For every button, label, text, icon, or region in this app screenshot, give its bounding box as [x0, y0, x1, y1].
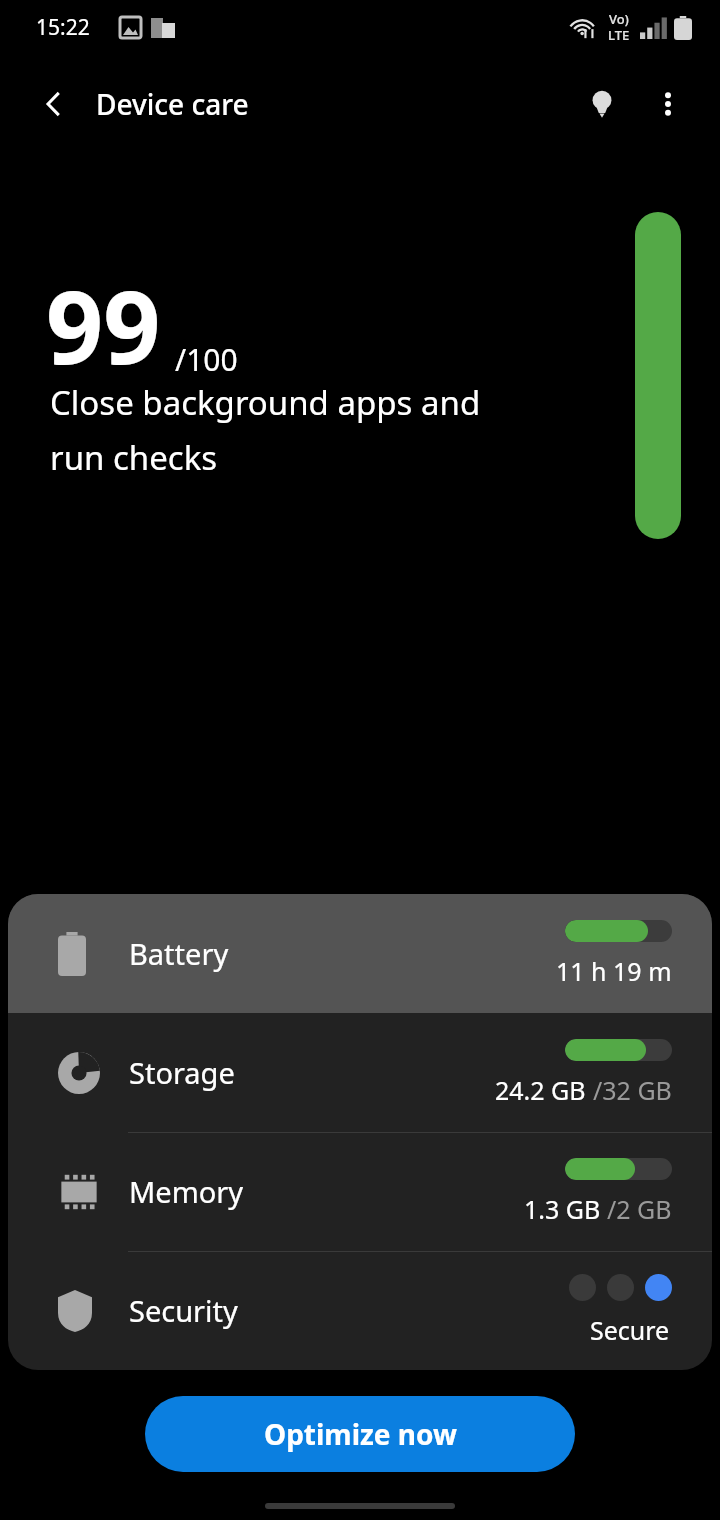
staticText: 99	[46, 257, 161, 393]
button[interactable]: Tips	[570, 72, 634, 136]
button[interactable]: Optimize now	[145, 1396, 575, 1472]
button[interactable]: Back	[24, 74, 84, 134]
staticText: Optimize now	[264, 1415, 457, 1453]
staticText: Close background apps and	[50, 380, 481, 425]
staticText: Memory	[129, 1172, 244, 1211]
staticText: Device care	[96, 85, 249, 123]
staticText: LTE	[608, 26, 630, 44]
staticText: /100	[175, 339, 238, 380]
staticText: 1.3 GB	[524, 1192, 607, 1226]
button[interactable]: More options	[638, 74, 698, 134]
staticText: 24.2 GB	[495, 1073, 593, 1107]
staticText: Secure	[590, 1313, 670, 1347]
staticText: Vo)	[609, 10, 629, 28]
staticText: Security	[129, 1291, 238, 1330]
staticText: /32 GB	[593, 1073, 672, 1107]
staticText: 15:22	[36, 13, 90, 42]
button[interactable]: Battery	[8, 894, 712, 1013]
staticText: /2 GB	[607, 1192, 672, 1226]
staticText: 11 h 19 m	[556, 954, 672, 988]
button[interactable]: Security	[8, 1251, 712, 1370]
button[interactable]: Memory	[8, 1132, 712, 1251]
staticText: Battery	[129, 934, 229, 973]
staticText: Storage	[129, 1053, 235, 1092]
staticText: run checks	[50, 435, 218, 480]
button[interactable]: Storage	[8, 1013, 712, 1132]
